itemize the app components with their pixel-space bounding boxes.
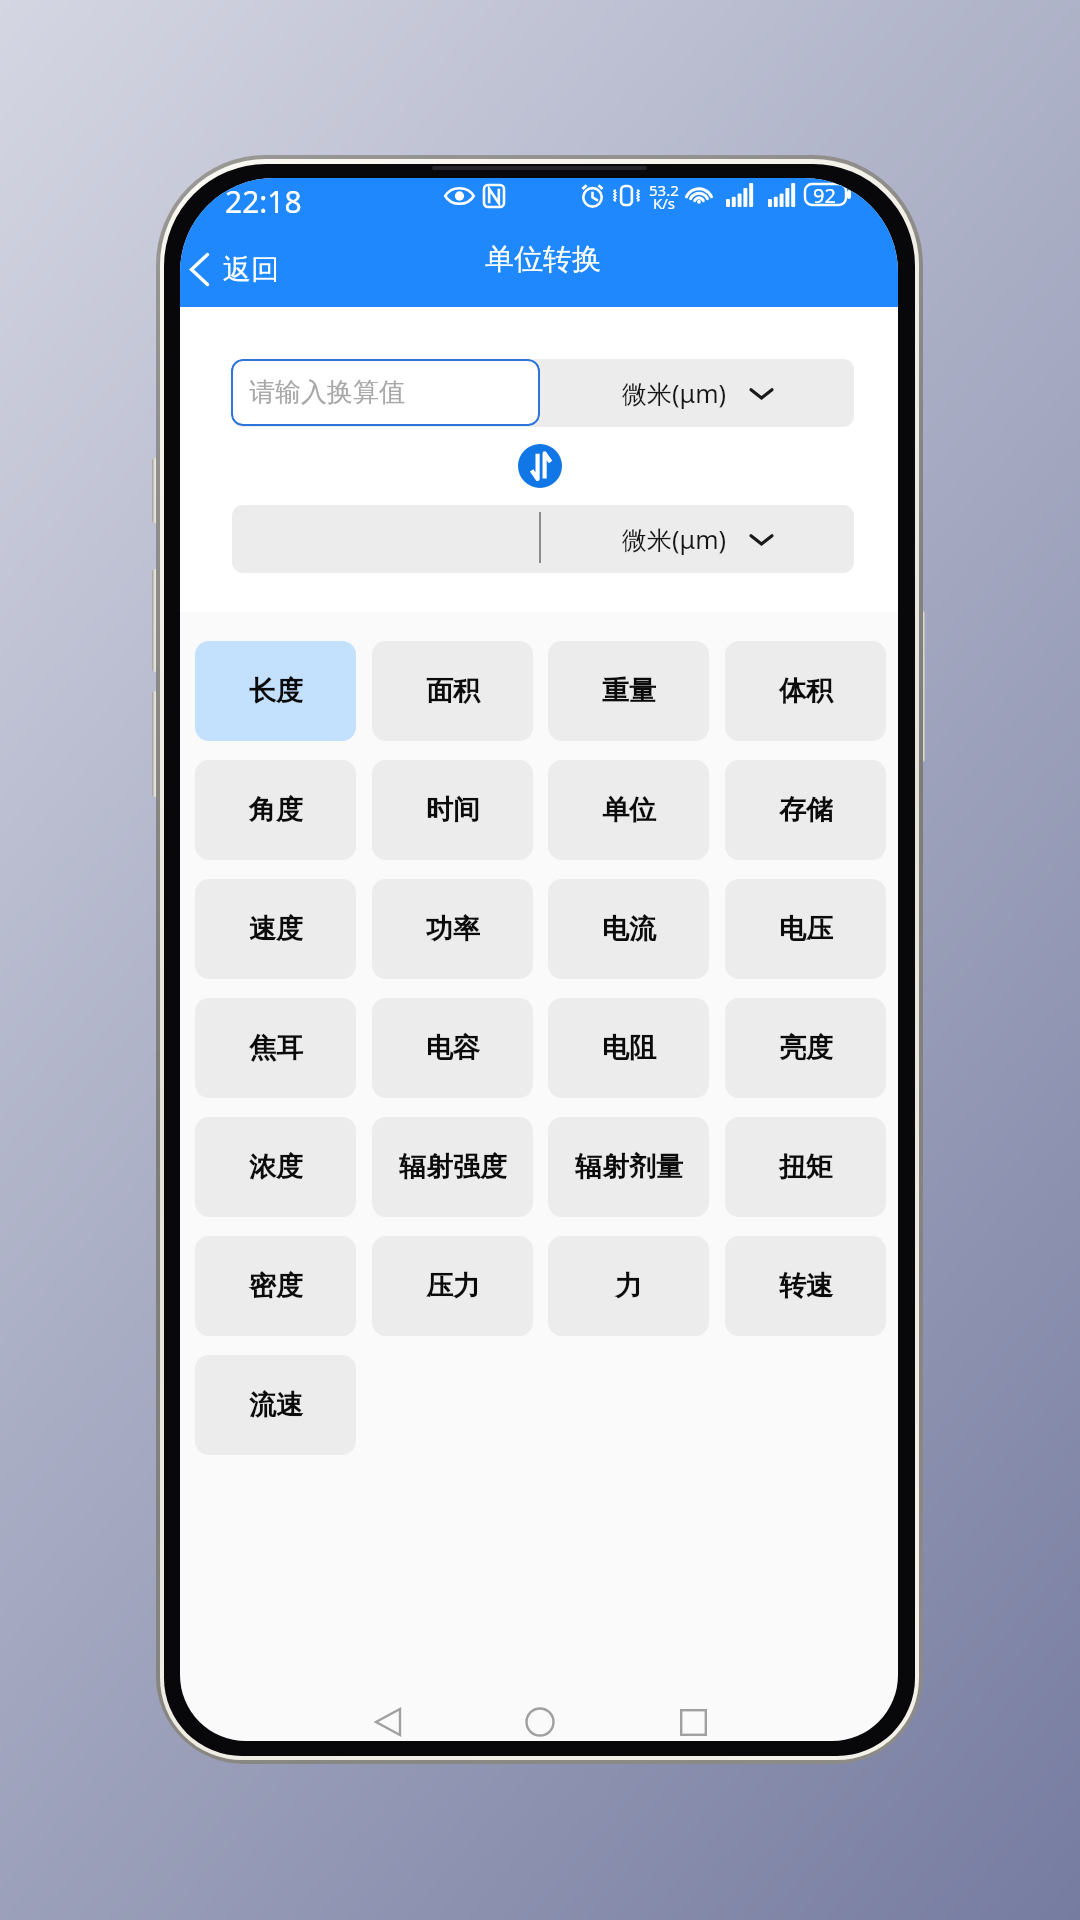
staticText: 存储 — [779, 793, 833, 827]
staticText: K/s — [653, 193, 676, 213]
staticText: 53.2 — [649, 180, 679, 200]
staticText: 速度 — [249, 912, 303, 946]
button[interactable]: 扭矩 — [725, 1117, 886, 1217]
button[interactable]: 浓度 — [195, 1117, 356, 1217]
button[interactable]: 时间 — [372, 760, 533, 860]
button[interactable]: 辐射剂量 — [548, 1117, 709, 1217]
staticText: 92 — [813, 182, 836, 205]
staticText: 请输入换算值 — [249, 376, 405, 409]
button[interactable]: Swap units — [518, 444, 562, 488]
staticText: 辐射剂量 — [575, 1150, 683, 1184]
staticText: 力 — [615, 1269, 642, 1303]
button[interactable]: Recent apps — [663, 1692, 723, 1741]
staticText: 时间 — [426, 793, 480, 827]
button[interactable]: 辐射强度 — [372, 1117, 533, 1217]
staticText: 微米(μm) — [622, 376, 727, 410]
button[interactable]: 长度 — [195, 641, 356, 741]
button[interactable]: 亮度 — [725, 998, 886, 1098]
button[interactable]: 微米(μm) — [602, 364, 798, 422]
staticText: 流速 — [249, 1388, 303, 1422]
staticText: 电容 — [426, 1031, 480, 1065]
button[interactable]: 密度 — [195, 1236, 356, 1336]
button[interactable]: 电压 — [725, 879, 886, 979]
staticText: 角度 — [249, 793, 303, 827]
button[interactable]: 速度 — [195, 879, 356, 979]
staticText: 体积 — [779, 674, 833, 708]
staticText: 长度 — [249, 674, 303, 708]
button[interactable]: 微米(μm) — [602, 510, 798, 568]
staticText: 辐射强度 — [399, 1150, 507, 1184]
staticText: 微米(μm) — [622, 522, 727, 556]
staticText: 电流 — [602, 912, 656, 946]
staticText: 重量 — [602, 674, 656, 708]
staticText: 电压 — [779, 912, 833, 946]
button[interactable]: 体积 — [725, 641, 886, 741]
staticText: 浓度 — [249, 1150, 303, 1184]
button[interactable]: 转速 — [725, 1236, 886, 1336]
button[interactable]: 请输入换算值 — [231, 359, 540, 426]
staticText: 面积 — [426, 674, 480, 708]
button[interactable]: 存储 — [725, 760, 886, 860]
button[interactable]: 角度 — [195, 760, 356, 860]
staticText: 22:18 — [225, 181, 302, 222]
staticText: 密度 — [249, 1269, 303, 1303]
staticText: 扭矩 — [779, 1150, 833, 1184]
staticText: 单位 — [602, 793, 656, 827]
button[interactable]: 焦耳 — [195, 998, 356, 1098]
button[interactable]: 力 — [548, 1236, 709, 1336]
staticText: 焦耳 — [249, 1031, 303, 1065]
button[interactable]: 功率 — [372, 879, 533, 979]
button[interactable]: 重量 — [548, 641, 709, 741]
staticText: 亮度 — [779, 1031, 833, 1065]
button[interactable]: Back — [358, 1692, 418, 1741]
button[interactable]: 电容 — [372, 998, 533, 1098]
button[interactable]: Home — [510, 1692, 570, 1741]
button[interactable]: 压力 — [372, 1236, 533, 1336]
button[interactable]: 面积 — [372, 641, 533, 741]
staticText: 转速 — [779, 1269, 833, 1303]
button[interactable]: 电阻 — [548, 998, 709, 1098]
staticText: 电阻 — [602, 1031, 656, 1065]
button[interactable]: 流速 — [195, 1355, 356, 1455]
staticText: 压力 — [426, 1269, 480, 1303]
staticText: 单位转换 — [485, 241, 601, 278]
staticText: 返回 — [223, 252, 279, 287]
button[interactable]: 电流 — [548, 879, 709, 979]
button[interactable]: 单位 — [548, 760, 709, 860]
button[interactable]: 返回 — [182, 242, 295, 297]
staticText: 功率 — [426, 912, 480, 946]
